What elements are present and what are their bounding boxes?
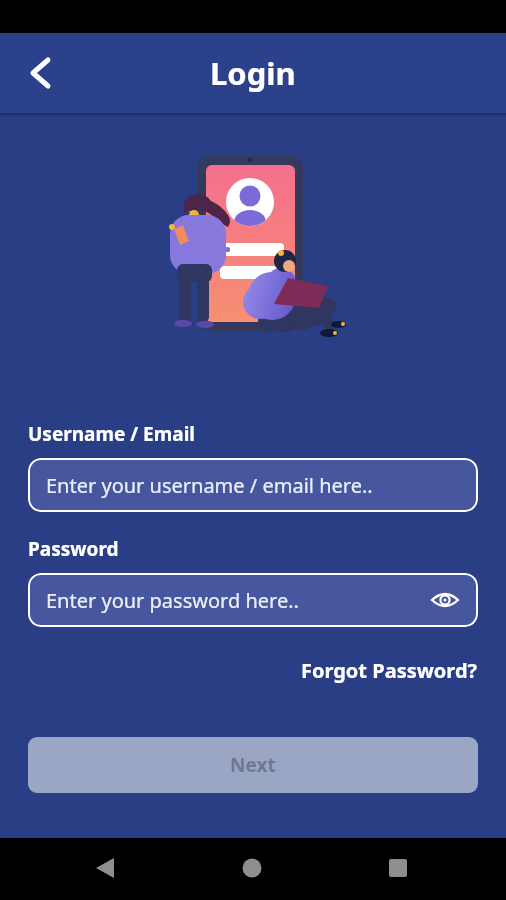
staticText: Login [210,52,296,94]
button[interactable]: Enter your password here.. [28,573,478,627]
staticText: Enter your password here.. [46,587,299,614]
button[interactable] [378,848,418,888]
staticText: Username / Email [28,421,195,447]
staticText: Next [230,752,276,778]
staticText: Password [28,536,119,562]
button[interactable]: Enter your username / email here.. [28,458,478,512]
button[interactable]: Next [28,737,478,793]
staticText: Enter your username / email here.. [46,472,373,499]
button[interactable] [28,58,50,88]
button[interactable] [431,590,459,610]
button[interactable] [232,848,272,888]
button[interactable] [85,848,125,888]
button[interactable]: Forgot Password? [301,657,478,684]
